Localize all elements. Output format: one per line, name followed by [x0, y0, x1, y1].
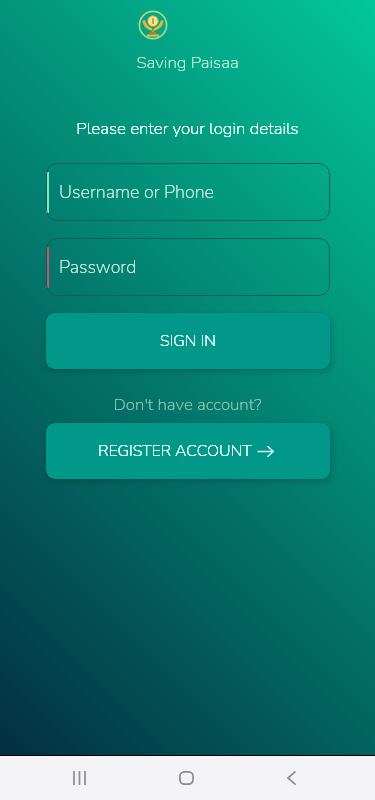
button[interactable]: REGISTER ACCOUNT	[46, 423, 330, 479]
staticText: Saving Paisaa	[0, 51, 375, 74]
button[interactable]: SIGN IN	[46, 313, 330, 369]
staticText: SIGN IN	[160, 330, 216, 352]
staticText: Don't have account?	[0, 393, 375, 416]
button[interactable]: Recent apps	[58, 756, 102, 800]
staticText: Password	[59, 255, 137, 280]
button[interactable]: Username or Phone	[46, 163, 330, 221]
staticText: Please enter your login details	[0, 117, 375, 140]
staticText: Please enter your login details	[0, 117, 375, 140]
button[interactable]: Password	[46, 238, 330, 296]
button[interactable]: Home	[164, 756, 208, 800]
staticText: Username or Phone	[59, 180, 215, 205]
staticText: SIGN IN	[160, 330, 216, 352]
button[interactable]: Back	[269, 756, 313, 800]
staticText: REGISTER ACCOUNT	[98, 440, 252, 462]
staticText: REGISTER ACCOUNT	[98, 440, 252, 462]
